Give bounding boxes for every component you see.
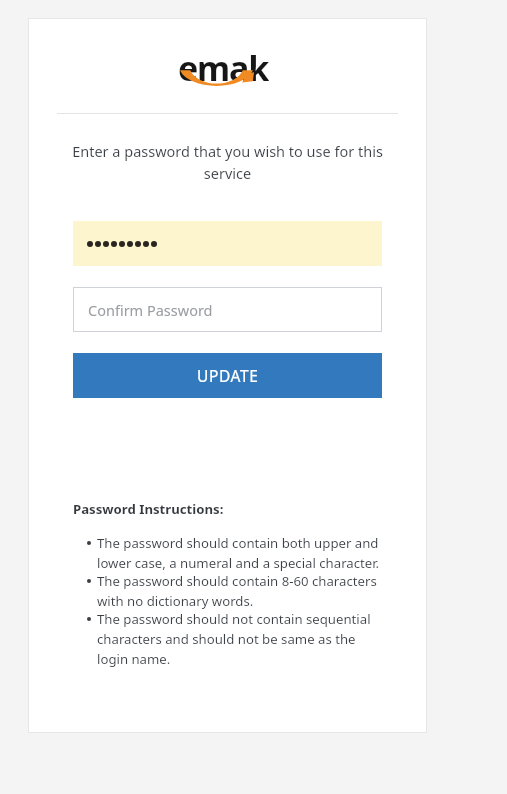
staticText: Confirm Password bbox=[88, 300, 213, 320]
staticText: Password Instructions: bbox=[73, 500, 224, 518]
button[interactable]: Confirm Password bbox=[73, 287, 382, 332]
staticText: The password should not contain sequenti… bbox=[97, 610, 382, 668]
button[interactable]: UPDATE bbox=[73, 353, 382, 398]
staticText: emak bbox=[178, 45, 269, 85]
staticText: The password should contain 8-60 charact… bbox=[97, 572, 382, 610]
staticText: The password should contain both upper a… bbox=[97, 534, 382, 572]
staticText: UPDATE bbox=[197, 365, 259, 386]
staticText: Enter a password that you wish to use fo… bbox=[72, 141, 383, 183]
button[interactable] bbox=[73, 221, 382, 266]
